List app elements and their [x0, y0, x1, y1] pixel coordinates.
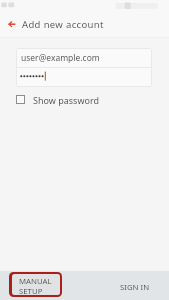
- button[interactable]: SIGN IN: [113, 271, 157, 300]
- staticText: Add new account: [22, 18, 104, 31]
- button[interactable]: Navigate up: [4, 15, 20, 31]
- staticText: Show password: [33, 94, 99, 106]
- button[interactable]: [16, 68, 152, 87]
- button[interactable]: user@example.com: [16, 48, 152, 67]
- staticText: MANUAL SETUP: [19, 276, 52, 295]
- button[interactable]: Show password: [0, 91, 169, 108]
- staticText: SIGN IN: [120, 282, 150, 293]
- button[interactable]: MANUAL SETUP: [9, 272, 62, 297]
- staticText: user@example.com: [21, 52, 100, 64]
